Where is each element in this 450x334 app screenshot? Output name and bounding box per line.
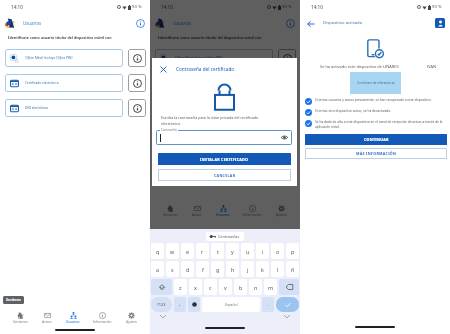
button[interactable]: Mostrar contraseña (281, 134, 288, 141)
button[interactable]: Usuario (435, 18, 445, 28)
staticText: CANCELAR (214, 173, 236, 178)
button[interactable]: Usuarios (215, 205, 231, 217)
staticText: f (202, 266, 204, 273)
button[interactable]: MÁS INFORMACIÓN (305, 148, 447, 159)
staticText: Gestiones (6, 298, 21, 302)
button[interactable]: Español (202, 297, 260, 312)
staticText: , (179, 301, 181, 307)
button[interactable]: Gestiones (12, 312, 29, 324)
button[interactable]: b (234, 279, 247, 295)
button[interactable]: Usuarios (65, 312, 81, 324)
button[interactable]: Avisos (191, 205, 203, 217)
button[interactable]: Ajustes (275, 205, 288, 217)
button[interactable]: p (286, 243, 299, 259)
button[interactable]: m (264, 279, 277, 295)
button[interactable]: g (211, 261, 224, 277)
button[interactable]: e (181, 243, 194, 259)
button[interactable]: Más información (128, 49, 146, 67)
button[interactable]: CONTINUAR (305, 134, 447, 145)
staticText: Ajustes (126, 320, 137, 324)
button[interactable]: CANCELAR (158, 169, 291, 181)
button[interactable]: k (256, 261, 269, 277)
button[interactable]: . (262, 297, 274, 312)
button[interactable]: ?123 (151, 297, 172, 312)
staticText: . (267, 301, 269, 307)
staticText: l (277, 266, 279, 273)
button[interactable]: Ajustes (125, 312, 138, 324)
staticText: Cl@ve Móvil (incluye Cl@ve PIN) (25, 56, 73, 60)
button[interactable]: a (151, 261, 164, 277)
button[interactable]: h (226, 261, 239, 277)
button[interactable]: o (271, 243, 284, 259)
button[interactable]: Avisos (41, 312, 53, 324)
button[interactable]: l (271, 261, 284, 277)
button[interactable]: , (174, 297, 186, 312)
button[interactable]: x (189, 279, 202, 295)
staticText: Avisos (192, 213, 202, 217)
button[interactable]: Emoji (188, 297, 200, 312)
staticText: Si tenías otro dispositivo activo, se ha… (315, 109, 391, 113)
button[interactable]: c (204, 279, 217, 295)
staticText: Si tenías usuarios y avisos previamente,… (315, 98, 432, 102)
button[interactable]: Certificado electrónico (5, 74, 123, 92)
button[interactable]: Información (242, 205, 263, 217)
staticText: m (268, 284, 274, 291)
button[interactable]: Más información (278, 49, 296, 67)
staticText: 14:10 (161, 4, 173, 10)
button[interactable]: z (174, 279, 187, 295)
button[interactable]: Borrar (279, 279, 299, 295)
button[interactable]: ñ (286, 261, 299, 277)
button[interactable]: t (211, 243, 224, 259)
button[interactable]: Gestiones (162, 205, 179, 217)
staticText: Usuarios (173, 20, 192, 26)
button[interactable]: Contraseñas (206, 232, 244, 241)
button[interactable]: Ayuda (135, 18, 145, 28)
button[interactable]: n (249, 279, 262, 295)
button[interactable]: j (241, 261, 254, 277)
button[interactable]: Cl@ve Móvil (incluye Cl@ve PIN) (155, 49, 273, 67)
staticText: Certificado electrónico (25, 81, 59, 85)
button[interactable]: Cl@ve Móvil (incluye Cl@ve PIN) (5, 49, 123, 67)
button[interactable]: s (166, 261, 179, 277)
staticText: j (247, 266, 249, 273)
button[interactable]: Mayúsculas (151, 279, 172, 295)
button[interactable]: Información (92, 312, 113, 324)
button[interactable]: Más información (128, 74, 146, 92)
button[interactable]: r (196, 243, 209, 259)
staticText: n (254, 284, 258, 291)
staticText: e (186, 248, 190, 255)
staticText: i (262, 248, 264, 255)
button[interactable]: q (151, 243, 164, 259)
button[interactable]: Intro (276, 297, 299, 312)
button[interactable]: f (196, 261, 209, 277)
button[interactable]: w (166, 243, 179, 259)
button[interactable]: d (181, 261, 194, 277)
staticText: IVAN (427, 64, 437, 69)
button[interactable]: v (219, 279, 232, 295)
staticText: Contraseña del certificado (176, 66, 235, 72)
button[interactable]: Más información (128, 99, 146, 117)
staticText: Avisos (42, 320, 52, 324)
button[interactable]: i (256, 243, 269, 259)
button[interactable]: Mostrar contraseña (156, 130, 292, 145)
staticText: Dispositivo activado (323, 20, 363, 26)
button[interactable]: INSTALAR CERTIFICADO (158, 153, 291, 165)
staticText: q (156, 248, 160, 255)
button[interactable]: Gestiones (3, 296, 24, 304)
button[interactable]: y (226, 243, 239, 259)
staticText: o (276, 248, 280, 255)
button[interactable]: DNI electrónico (5, 99, 123, 117)
button[interactable]: u (241, 243, 254, 259)
staticText: 14:10 (311, 4, 323, 10)
button[interactable]: Atrás (306, 19, 315, 28)
staticText: 93 % (282, 4, 292, 10)
staticText: Identifícate como usuario titular del di… (158, 35, 262, 40)
button[interactable]: DNI electrónico (155, 99, 273, 117)
staticText: 93 % (432, 4, 442, 10)
staticText: Español (225, 302, 238, 307)
button[interactable]: Cerrar (158, 64, 168, 74)
button[interactable]: Certificado electrónico (155, 74, 273, 92)
